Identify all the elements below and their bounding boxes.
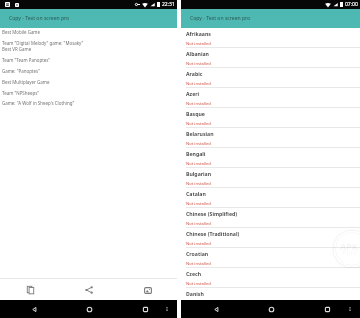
button[interactable]: Belarusian bbox=[181, 128, 360, 148]
button[interactable]: Chinese (Simplified) bbox=[181, 208, 360, 228]
staticText: Game: "A Wolf in Sheep's Clothing" bbox=[2, 100, 75, 106]
button[interactable]: Home bbox=[265, 303, 277, 315]
staticText: Not installed bbox=[186, 161, 211, 167]
staticText: Team "Digital Melody" game: "Mosaky" bbox=[2, 40, 84, 46]
staticText: Czech bbox=[186, 270, 202, 277]
staticText: APK bbox=[340, 240, 358, 252]
button[interactable]: Afrikaans bbox=[181, 28, 360, 48]
button[interactable]: Copy bbox=[21, 281, 39, 299]
staticText: Not installed bbox=[186, 241, 211, 247]
button[interactable]: Back bbox=[210, 303, 222, 315]
button[interactable]: Recents bbox=[139, 303, 151, 315]
button[interactable]: Share bbox=[80, 281, 98, 299]
button[interactable]: Chinese (Traditional) bbox=[181, 228, 360, 248]
button[interactable]: More options bbox=[345, 304, 355, 314]
staticText: Not installed bbox=[186, 141, 211, 147]
button[interactable]: Danish bbox=[181, 288, 360, 308]
button[interactable]: Czech bbox=[181, 268, 360, 288]
staticText: Game: "Panoptes" bbox=[2, 68, 40, 74]
staticText: Bengali bbox=[186, 150, 206, 157]
staticText: Best Mobile Game bbox=[2, 29, 41, 35]
button[interactable]: Croatian bbox=[181, 248, 360, 268]
staticText: Chinese (Simplified) bbox=[186, 210, 238, 217]
button[interactable]: Back bbox=[28, 303, 40, 315]
staticText: Bulgarian bbox=[186, 170, 212, 177]
button[interactable]: Image bbox=[139, 281, 157, 299]
staticText: Not installed bbox=[186, 181, 211, 187]
staticText: 07:00 bbox=[345, 1, 358, 8]
staticText: Albanian bbox=[186, 50, 209, 57]
button[interactable]: Basque bbox=[181, 108, 360, 128]
staticText: Best VR Game bbox=[2, 46, 32, 52]
staticText: Not installed bbox=[186, 121, 211, 127]
staticText: Basque bbox=[186, 110, 205, 117]
button[interactable]: Recents bbox=[321, 303, 333, 315]
staticText: Not installed bbox=[186, 81, 211, 87]
button[interactable]: Albanian bbox=[181, 48, 360, 68]
staticText: Chinese (Traditional) bbox=[186, 230, 240, 237]
staticText: 22:31 bbox=[162, 1, 175, 8]
staticText: Arabic bbox=[186, 70, 203, 77]
staticText: Not installed bbox=[186, 221, 211, 227]
staticText: Not installed bbox=[186, 61, 211, 67]
staticText: Not installed bbox=[186, 261, 211, 267]
staticText: Team "NPSheeps" bbox=[2, 90, 40, 96]
button[interactable]: Catalan bbox=[181, 188, 360, 208]
staticText: Not installed bbox=[186, 101, 211, 107]
button[interactable]: Bulgarian bbox=[181, 168, 360, 188]
staticText: Copy - Text on screen pro bbox=[9, 15, 70, 22]
staticText: Not installed bbox=[186, 41, 211, 47]
staticText: Danish bbox=[186, 290, 204, 297]
staticText: Not installed bbox=[186, 281, 211, 287]
staticText: Catalan bbox=[186, 190, 206, 197]
staticText: Croatian bbox=[186, 250, 209, 257]
staticText: Best Multiplayer Game bbox=[2, 79, 50, 85]
staticText: Copy - Text on screen pro bbox=[190, 15, 251, 22]
button[interactable]: Bengali bbox=[181, 148, 360, 168]
staticText: Belarusian bbox=[186, 130, 214, 137]
staticText: Not installed bbox=[186, 201, 211, 207]
staticText: Azeri bbox=[186, 90, 200, 97]
staticText: Afrikaans bbox=[186, 30, 211, 37]
button[interactable]: Azeri bbox=[181, 88, 360, 108]
staticText: Team "Team Panoptes" bbox=[2, 57, 51, 63]
button[interactable]: Arabic bbox=[181, 68, 360, 88]
button[interactable]: More options bbox=[162, 304, 172, 314]
button[interactable]: Home bbox=[83, 303, 95, 315]
